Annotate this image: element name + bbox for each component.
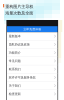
- button[interactable]: 常见问题: [7, 57, 58, 65]
- staticText: 软件许可及服务条款: [9, 75, 36, 79]
- button[interactable]: 检查更新: [7, 90, 58, 98]
- staticText: 重构图片主导权: [5, 4, 33, 9]
- button[interactable]: 立即免费体验: [7, 26, 58, 32]
- staticText: 关于我们: [9, 84, 21, 88]
- button[interactable]: 软件许可及服务条款: [7, 73, 58, 81]
- button[interactable]: 联系我们: [7, 65, 58, 73]
- button[interactable]: 关于我们: [7, 82, 58, 90]
- button[interactable]: 最新版本: [7, 32, 58, 40]
- staticText: 联系我们: [9, 67, 21, 71]
- staticText: 功能简介: [9, 51, 21, 55]
- staticText: 海量次数及全面: [5, 10, 33, 16]
- staticText: 隐私协议及政策: [9, 42, 30, 46]
- button[interactable]: 功能简介: [7, 49, 58, 57]
- staticText: 常见问题: [9, 59, 21, 63]
- staticText: 最新版本: [9, 34, 21, 38]
- staticText: 立即免费体验: [23, 27, 41, 31]
- staticText: 检查更新: [9, 92, 21, 96]
- button[interactable]: 隐私协议及政策: [7, 40, 58, 48]
